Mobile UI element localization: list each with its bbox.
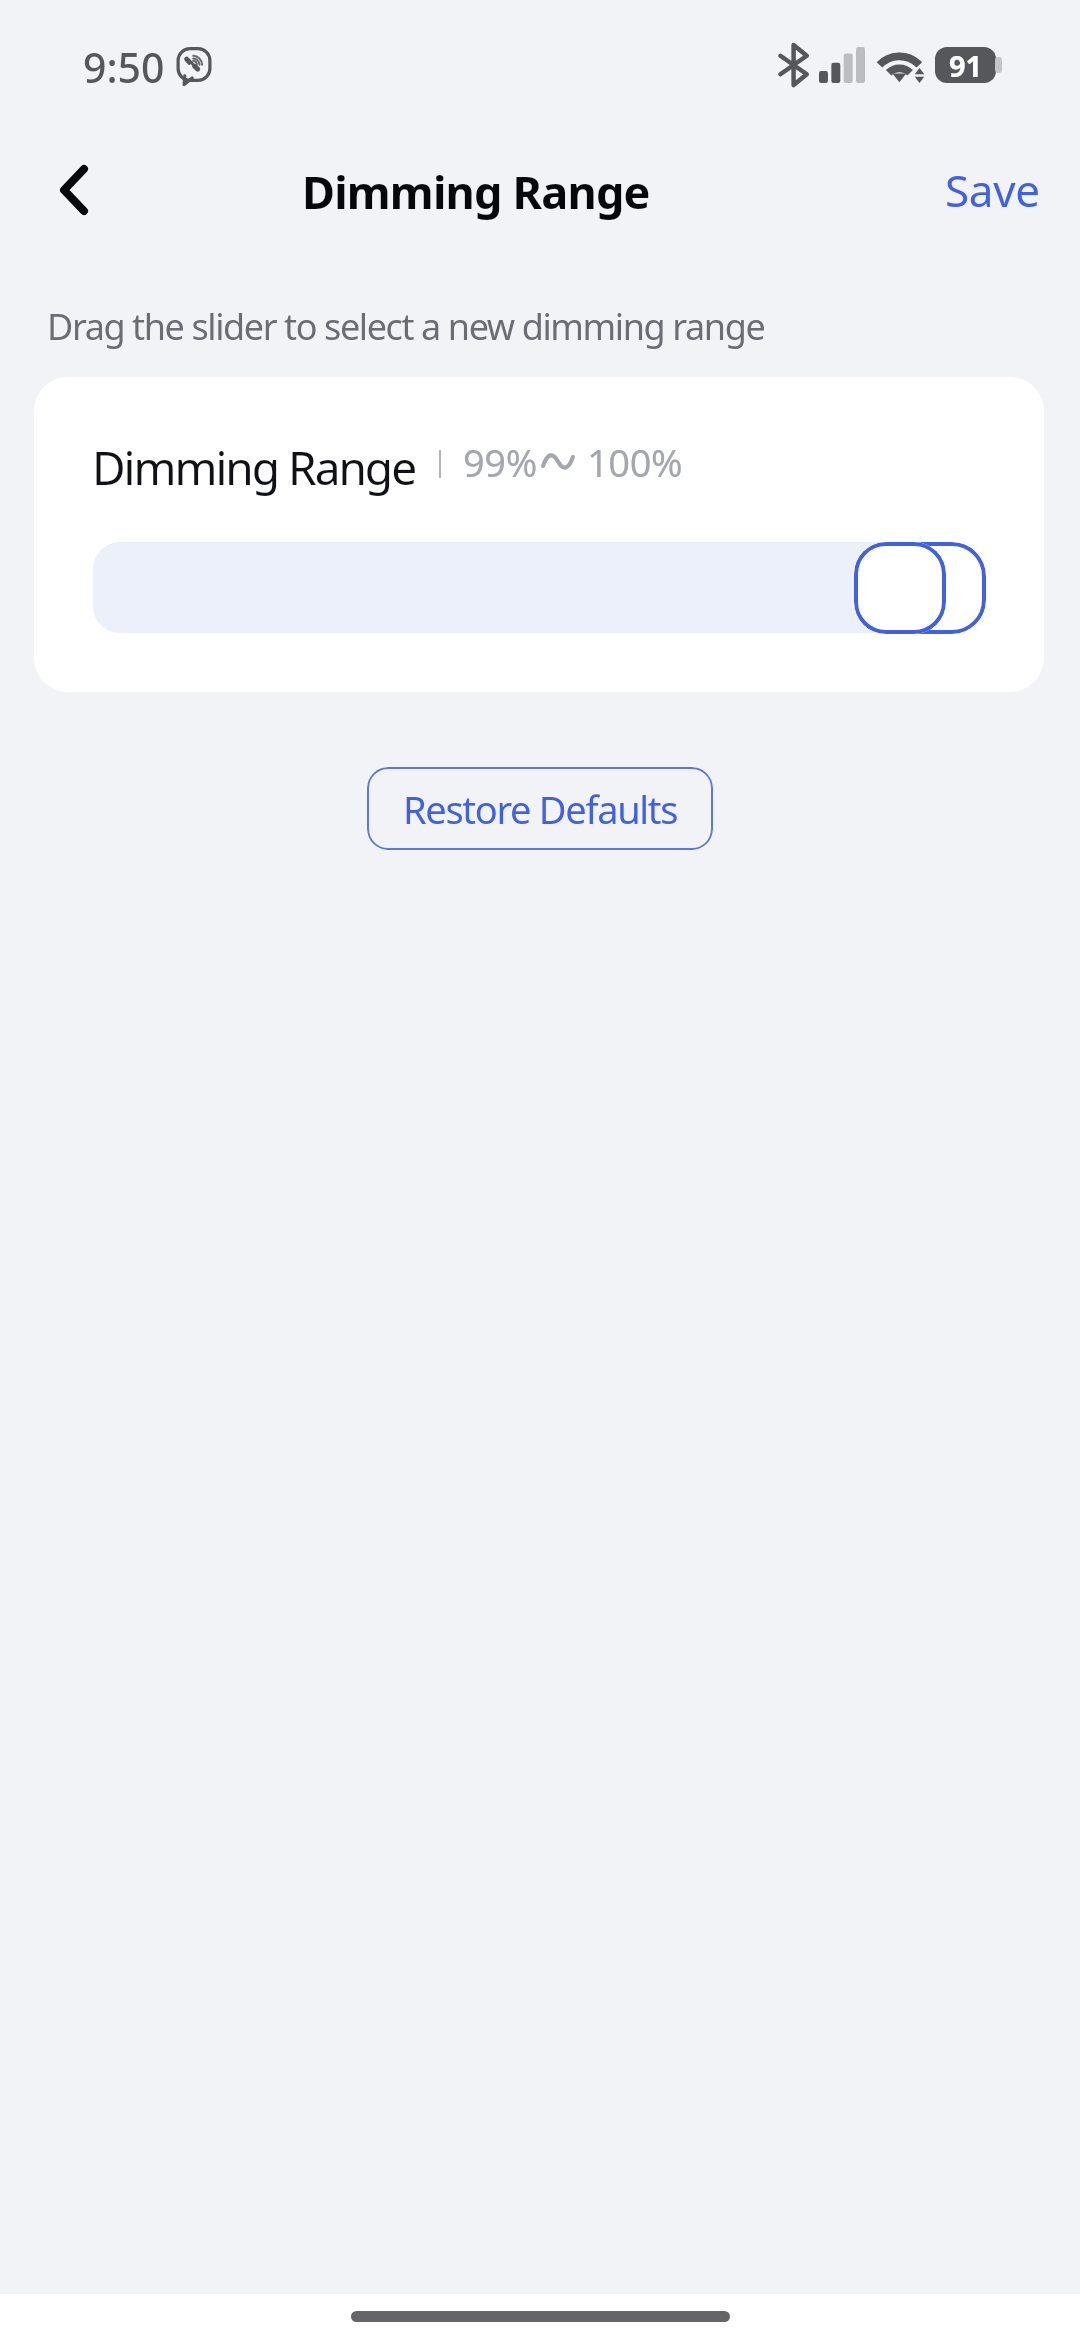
staticText: 99% [463,436,537,488]
button[interactable]: Upper dimming limit handle [882,542,986,634]
staticText: 9:50 [83,39,165,95]
staticText: 91 [949,47,983,82]
staticText: Restore Defaults [403,783,678,835]
button[interactable]: Restore Defaults [367,767,713,850]
staticText: Save [945,160,1040,220]
staticText: Drag the slider to select a new dimming … [47,302,765,351]
button[interactable]: Lower dimming limit handle [854,542,946,634]
button[interactable]: Back [30,148,118,232]
staticText: 100% [587,436,683,488]
staticText: Dimming Range [92,436,416,499]
staticText: Dimming Range [302,161,650,222]
button[interactable]: Save [912,148,1062,232]
